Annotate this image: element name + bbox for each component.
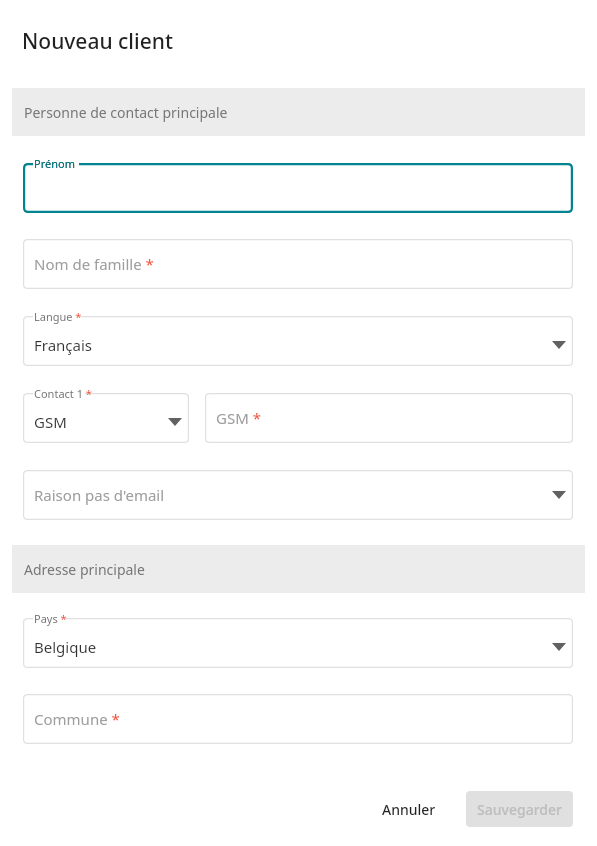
staticText: Français bbox=[34, 335, 93, 355]
staticText: Sauvegarder bbox=[466, 800, 573, 827]
staticText: GSM bbox=[34, 412, 67, 432]
staticText: Personne de contact principale bbox=[24, 103, 228, 122]
button[interactable] bbox=[205, 393, 573, 443]
button[interactable] bbox=[23, 393, 189, 443]
button[interactable]: Sauvegarder bbox=[466, 791, 573, 827]
staticText: Prénom bbox=[34, 156, 75, 171]
staticText: Belgique bbox=[34, 637, 97, 657]
staticText: Contact 1 * bbox=[34, 386, 92, 401]
staticText: Pays * bbox=[34, 611, 67, 626]
button[interactable] bbox=[23, 239, 573, 289]
staticText: Annuler bbox=[382, 800, 436, 819]
button[interactable] bbox=[23, 694, 573, 744]
button[interactable] bbox=[23, 163, 573, 213]
staticText: Nom de famille * bbox=[34, 254, 154, 274]
button[interactable] bbox=[23, 316, 573, 366]
button[interactable] bbox=[23, 618, 573, 668]
staticText: Langue * bbox=[34, 309, 82, 324]
staticText: GSM * bbox=[216, 408, 261, 428]
staticText: Raison pas d'email bbox=[34, 485, 165, 505]
staticText: Adresse principale bbox=[24, 560, 145, 579]
button[interactable]: Annuler bbox=[368, 791, 450, 827]
button[interactable] bbox=[23, 470, 573, 520]
staticText: Nouveau client bbox=[22, 27, 173, 56]
staticText: Commune * bbox=[34, 709, 120, 729]
staticText: Prénom bbox=[34, 156, 75, 171]
